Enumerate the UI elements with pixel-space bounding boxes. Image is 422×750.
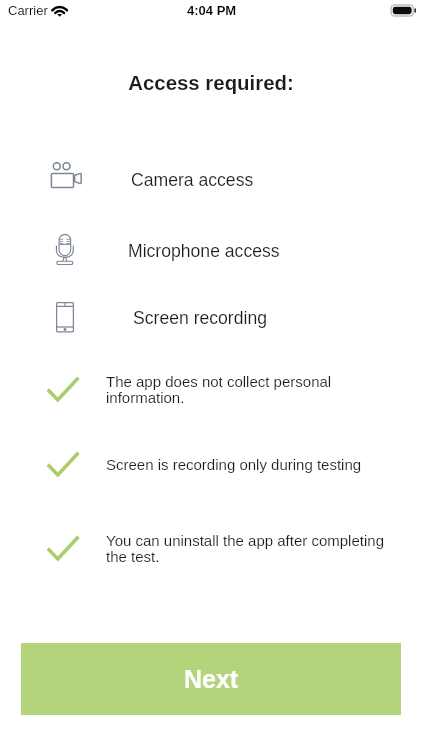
staticText: 4:04 PM — [187, 3, 237, 18]
button[interactable]: Next — [21, 643, 401, 715]
staticText: Camera access — [131, 170, 254, 190]
staticText: You can uninstall the app after completi… — [106, 532, 391, 565]
staticText: Screen is recording only during testing — [106, 456, 362, 473]
button[interactable]: Camera access — [0, 151, 422, 199]
button[interactable]: Screen recording — [0, 293, 422, 341]
button[interactable]: Microphone access — [0, 225, 422, 273]
staticText: The app does not collect personal inform… — [106, 373, 391, 406]
staticText: Microphone access — [128, 241, 280, 261]
other: Battery full — [391, 5, 416, 16]
other: Wi-Fi signal — [52, 5, 68, 17]
staticText: Access required: — [0, 72, 422, 95]
staticText: Screen recording — [133, 308, 267, 328]
staticText: Carrier — [8, 3, 48, 18]
staticText: Next — [184, 665, 239, 693]
